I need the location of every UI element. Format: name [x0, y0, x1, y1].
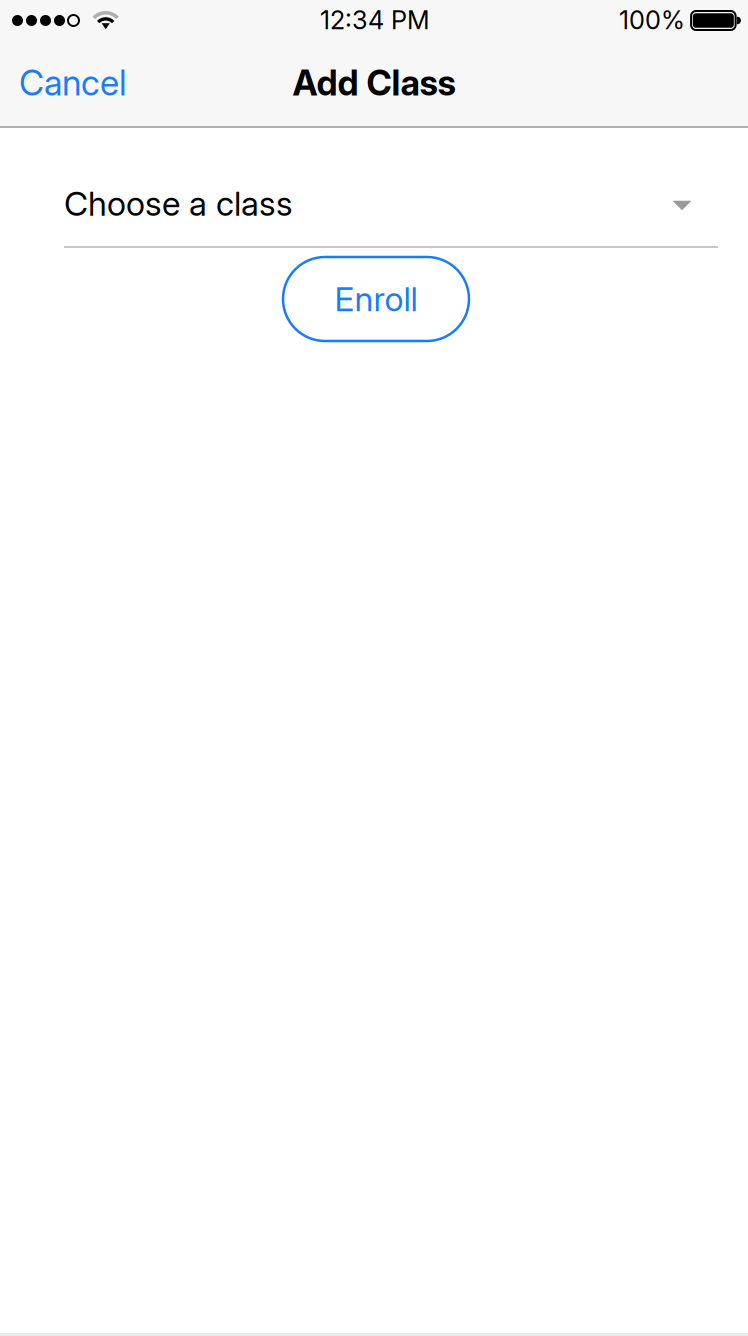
- button[interactable]: Enroll: [283, 257, 469, 341]
- staticText: Choose a class: [64, 183, 293, 224]
- staticText: Cancel: [19, 62, 127, 104]
- button[interactable]: Choose a class: [64, 129, 718, 248]
- button[interactable]: Cancel: [0, 40, 146, 126]
- staticText: 100%: [619, 5, 685, 35]
- staticText: Add Class: [292, 62, 455, 104]
- staticText: Enroll: [334, 279, 417, 319]
- staticText: 12:34 PM: [320, 5, 430, 35]
